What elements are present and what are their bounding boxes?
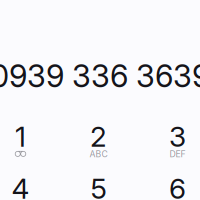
button[interactable]: 2 (62, 124, 134, 160)
staticText: ABC (89, 149, 107, 159)
button[interactable]: 3 (141, 124, 200, 160)
button[interactable]: 1, voicemail (0, 124, 56, 160)
staticText: 1 (15, 120, 26, 153)
button[interactable]: 5 (62, 176, 134, 200)
staticText: DEF (169, 149, 185, 159)
button[interactable]: 6 (141, 176, 200, 200)
staticText: 5 (90, 172, 106, 200)
button[interactable]: 4 (0, 176, 56, 200)
staticText: 0939 336 3639 (0, 57, 200, 94)
staticText: 2 (90, 120, 107, 153)
staticText: 6 (169, 172, 186, 200)
staticText: 4 (11, 172, 29, 200)
staticText: 3 (169, 120, 186, 153)
